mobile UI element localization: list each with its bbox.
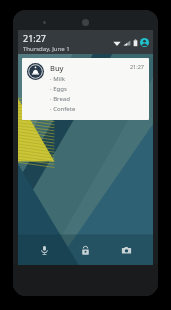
- staticText: · Milk: [50, 75, 65, 83]
- staticText: 21:27: [129, 63, 144, 70]
- button[interactable]: Buy: [22, 58, 149, 120]
- staticText: · Bread: [50, 95, 70, 103]
- staticText: · Eggs: [50, 85, 67, 93]
- button[interactable]: Unlock: [65, 235, 106, 265]
- button[interactable]: Voice search: [24, 235, 65, 265]
- staticText: Thursday, June 1: [23, 45, 70, 53]
- staticText: 21:27: [23, 32, 47, 44]
- button[interactable]: Camera: [106, 235, 147, 265]
- staticText: · Confete: [50, 105, 76, 113]
- staticText: Buy: [50, 63, 64, 73]
